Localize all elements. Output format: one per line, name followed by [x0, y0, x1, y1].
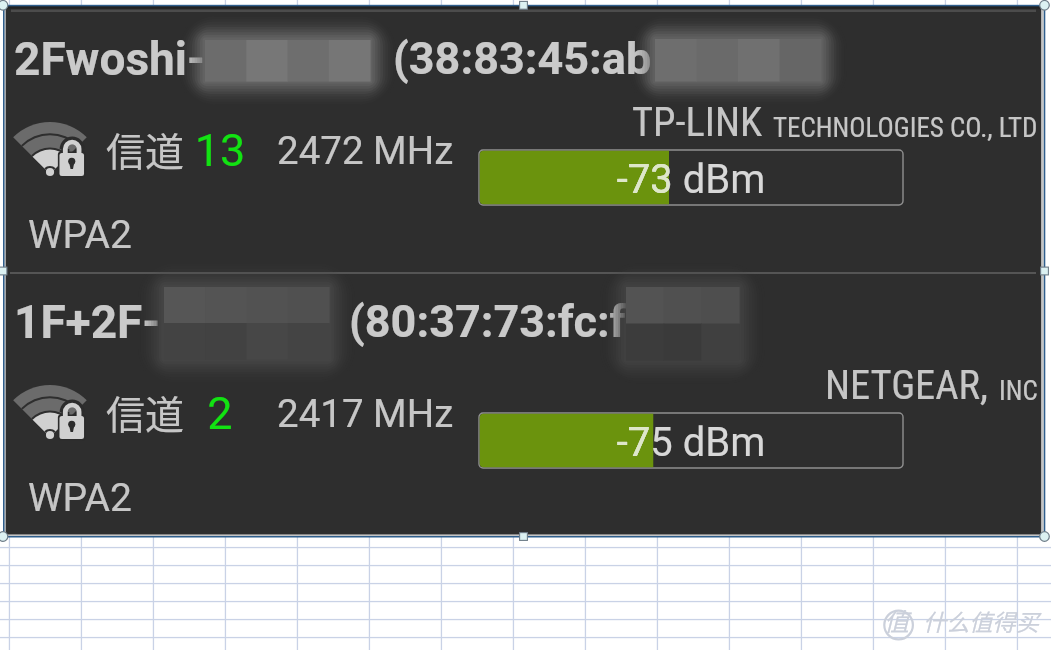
staticText: -73 dBm	[479, 156, 903, 211]
staticText: (38:83:45:ab	[393, 32, 652, 85]
staticText: NETGEAR,	[825, 361, 989, 408]
other: Secured Wi-Fi network	[9, 115, 87, 177]
staticText: 2	[180, 387, 260, 649]
staticText: 信道	[106, 384, 185, 440]
button[interactable]: 1F+2F-	[6, 269, 1041, 531]
other: Secured Wi-Fi network	[9, 378, 87, 440]
staticText: WPA2	[28, 212, 132, 258]
staticText: WPA2	[28, 475, 132, 521]
staticText: INC	[999, 375, 1038, 407]
staticText: -73 dBm	[479, 156, 903, 211]
staticText: -75 dBm	[479, 419, 903, 474]
staticText: 信道	[106, 121, 185, 177]
staticText: 什么值得买	[923, 604, 1039, 638]
button[interactable]: 2Fwoshi-	[6, 6, 1041, 268]
staticText: 值	[884, 602, 910, 638]
staticText: TECHNOLOGIES CO., LTD	[773, 112, 1038, 144]
staticText: 13	[180, 124, 260, 386]
staticText: TP-LINK	[632, 98, 763, 145]
staticText: 2472 MHz	[277, 128, 454, 173]
staticText: 2417 MHz	[277, 391, 454, 436]
staticText: -75 dBm	[479, 419, 903, 474]
staticText: 2Fwoshi-	[14, 32, 205, 86]
staticText: (80:37:73:fc:f	[349, 295, 626, 348]
staticText: 1F+2F-	[14, 295, 161, 349]
